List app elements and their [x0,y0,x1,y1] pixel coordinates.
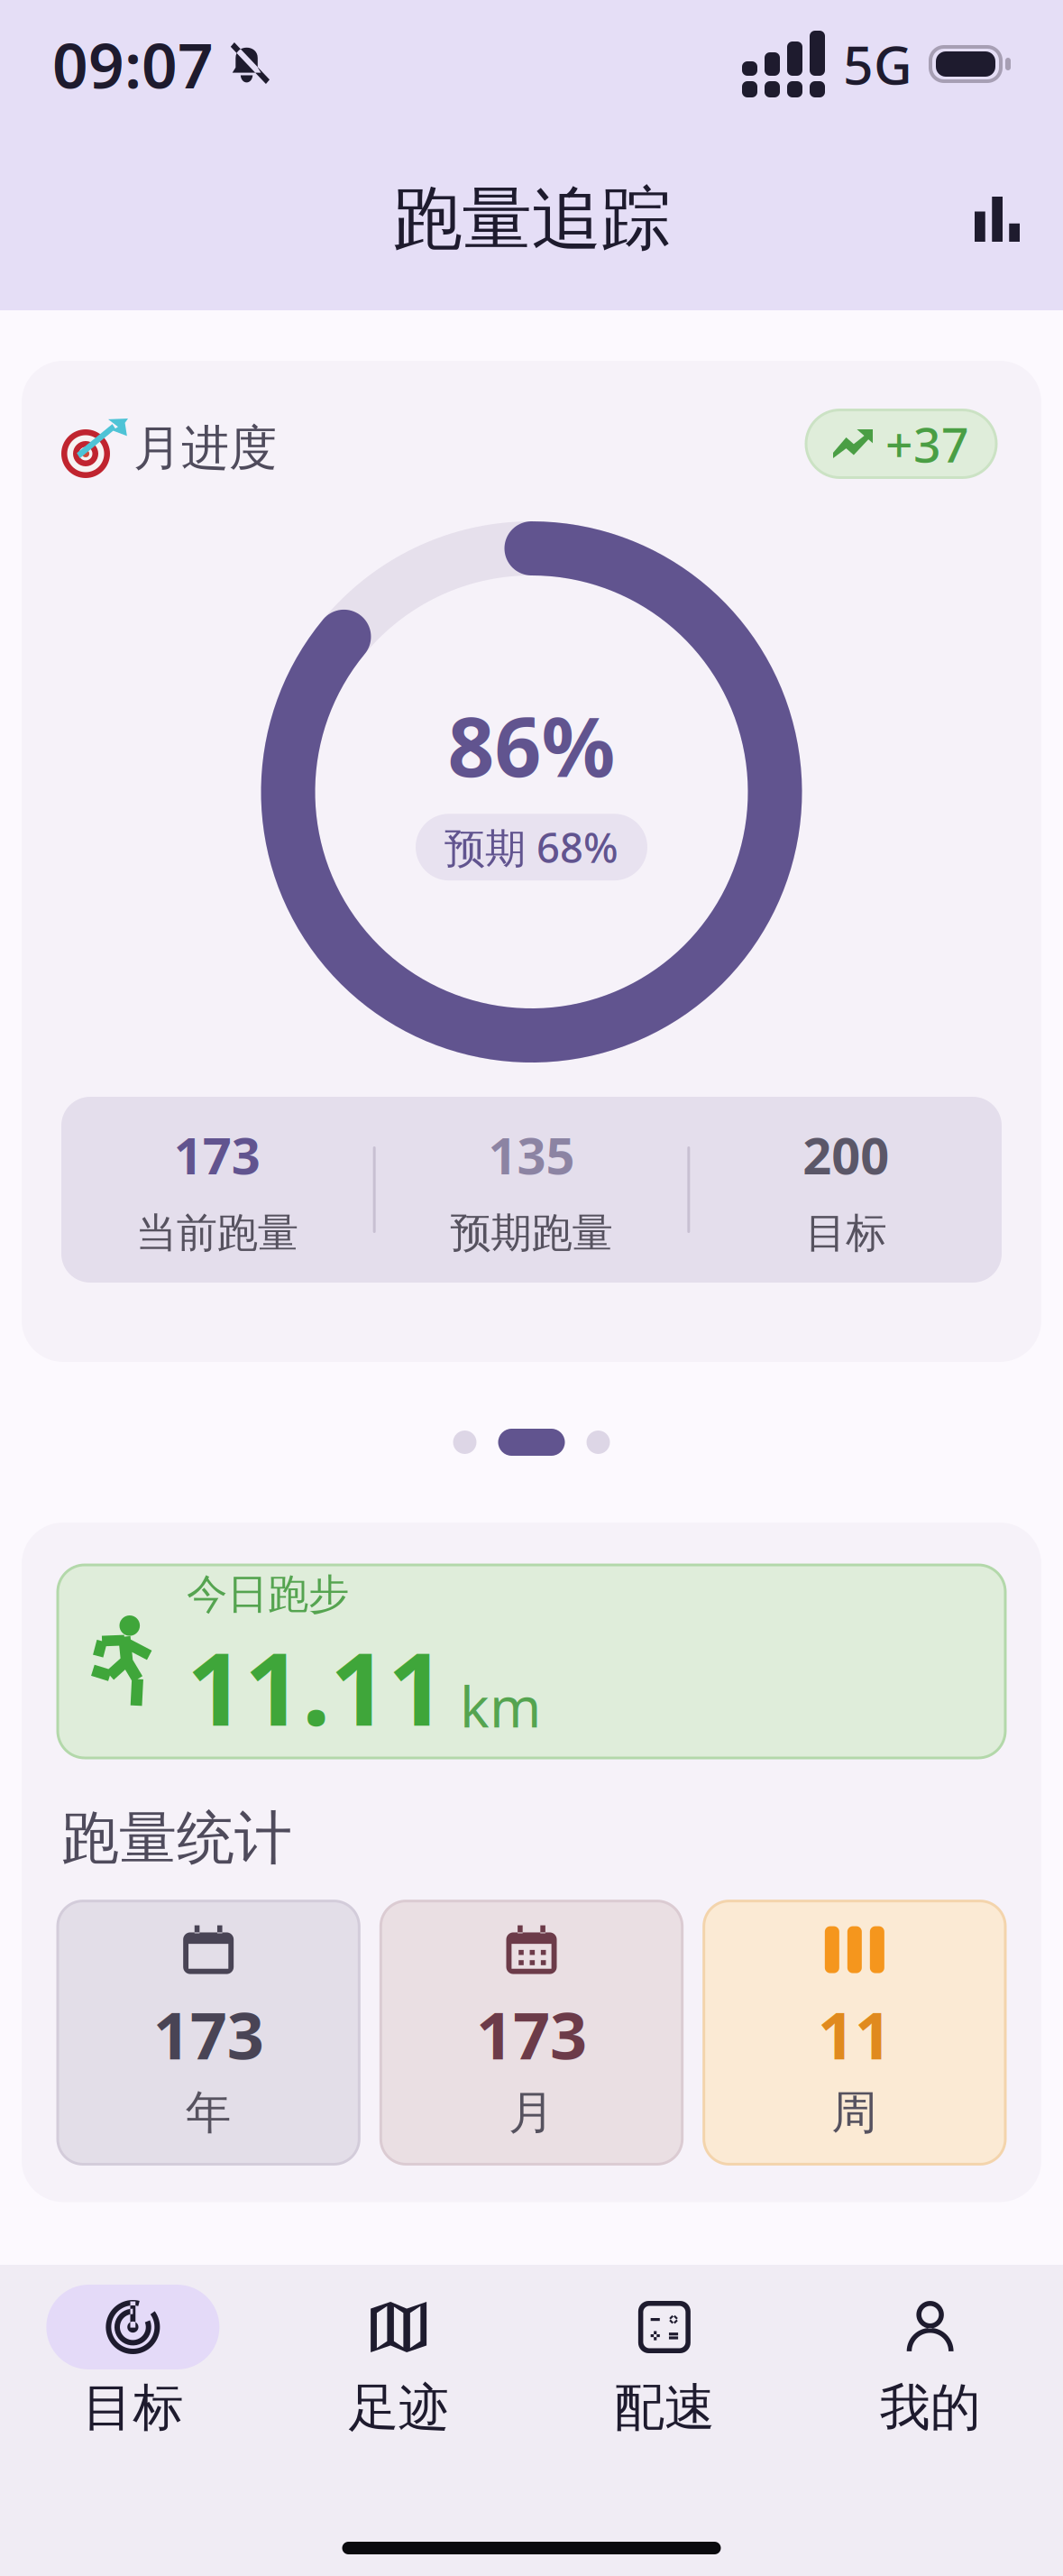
staticText: 135 [488,1121,575,1188]
staticText: km [460,1669,541,1743]
button[interactable]: 我的 [797,2285,1063,2439]
button[interactable]: 目标 [0,2285,266,2439]
staticText: 配速 [614,2377,715,2439]
staticText: 11.11 [187,1619,445,1754]
staticText: 足迹 [348,2377,449,2439]
staticText: 当前跑量 [136,1208,298,1258]
staticText: +37 [885,412,969,476]
button[interactable]: 173 [58,1901,359,2164]
staticText: 跑量统计 [61,1803,292,1874]
staticText: 目标 [82,2377,183,2439]
staticText: 预期 68% [444,820,619,874]
staticText: 目标 [805,1208,886,1258]
staticText: 09:07 [52,23,214,106]
button[interactable]: 统计图表 [953,173,1041,265]
staticText: 我的 [880,2377,981,2439]
button[interactable]: 配速 [531,2285,797,2439]
staticText: 173 [476,1991,587,2077]
staticText: 200 [803,1121,889,1188]
staticText: 86% [448,691,615,799]
staticText: 173 [174,1121,260,1188]
staticText: 周 [832,2085,878,2141]
staticText: 预期跑量 [450,1208,613,1258]
staticText: 今日跑步 [187,1569,349,1619]
button[interactable]: 足迹 [266,2285,532,2439]
staticText: 月进度 [133,419,277,478]
staticText: 年 [185,2085,231,2141]
staticText: 跑量追踪 [393,176,670,262]
button[interactable]: 173 [381,1901,682,2164]
staticText: 11 [818,1991,892,2077]
staticText: 173 [153,1991,264,2077]
staticText: 5G [843,29,912,99]
staticText: 月 [509,2085,554,2141]
button[interactable]: 11 [704,1901,1005,2164]
